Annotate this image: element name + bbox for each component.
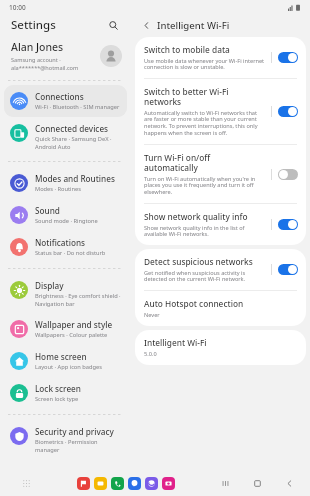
staticText: Switch to mobile data xyxy=(144,44,230,55)
staticText: Show network quality info xyxy=(144,211,248,222)
button[interactable]: Modes and Routines xyxy=(4,167,127,199)
button[interactable]: App xyxy=(162,477,175,490)
button[interactable]: Search xyxy=(105,17,121,33)
staticText: Switch to better Wi-Fi networks xyxy=(144,86,265,107)
button[interactable]: Alan Jones xyxy=(0,36,131,78)
button[interactable]: Wallpaper and style xyxy=(4,313,127,345)
button[interactable]: App xyxy=(111,477,124,490)
button[interactable]: App xyxy=(128,477,141,490)
staticText: Intelligent Wi-Fi xyxy=(157,19,230,32)
staticText: Connections xyxy=(35,91,84,102)
button[interactable]: Intelligent Wi-Fi xyxy=(135,330,306,365)
staticText: Sound mode · Ringtone xyxy=(35,217,98,225)
staticText: Status bar · Do not disturb xyxy=(35,249,106,257)
button[interactable]: Back xyxy=(139,18,153,32)
staticText: Security and privacy xyxy=(35,426,114,437)
staticText: Layout · App icon badges xyxy=(35,363,102,371)
staticText: Use mobile data whenever your Wi-Fi inte… xyxy=(144,57,265,71)
button[interactable]: Toggle on xyxy=(278,106,298,117)
button[interactable]: Home xyxy=(250,476,264,490)
staticText: Turn Wi-Fi on/off automatically xyxy=(144,152,265,173)
staticText: Show network quality info in the list of… xyxy=(144,224,265,238)
button[interactable]: Toggle on xyxy=(278,52,298,63)
staticText: Screen lock type xyxy=(35,395,79,403)
staticText: Brightness · Eye comfort shield · Naviga… xyxy=(35,292,121,307)
staticText: Notifications xyxy=(35,237,85,248)
staticText: 5.0.0 xyxy=(144,350,157,358)
staticText: Home screen xyxy=(35,351,87,362)
button[interactable]: Recents xyxy=(218,476,232,490)
staticText: Automatically switch to Wi-Fi networks t… xyxy=(144,109,265,137)
button[interactable]: Sound xyxy=(4,199,127,231)
button[interactable]: Toggle on xyxy=(278,219,298,230)
button[interactable]: Home screen xyxy=(4,345,127,377)
button[interactable]: Show network quality info xyxy=(135,204,306,245)
staticText: 10:00 xyxy=(9,3,26,12)
button[interactable]: Toggle on xyxy=(278,264,298,275)
staticText: Auto Hotspot connection xyxy=(144,298,244,309)
button[interactable]: Notifications xyxy=(4,231,127,263)
button[interactable]: Detect suspicious networks xyxy=(135,249,306,291)
staticText: Samsung account · xyxy=(11,56,61,64)
staticText: Connected devices xyxy=(35,123,109,134)
button[interactable]: Security and privacy xyxy=(4,420,127,459)
staticText: Turn on Wi-Fi automatically when you're … xyxy=(144,175,265,196)
staticText: Wallpaper and style xyxy=(35,319,113,330)
staticText: Modes · Routines xyxy=(35,185,81,193)
staticText: ala*******@hotmail.com xyxy=(11,64,79,72)
button[interactable]: Connections xyxy=(4,85,127,117)
button[interactable]: Apps xyxy=(18,475,34,491)
button[interactable]: Connected devices xyxy=(4,117,127,156)
staticText: Settings xyxy=(11,17,56,33)
button[interactable]: Switch to mobile data xyxy=(135,37,306,79)
staticText: Modes and Routines xyxy=(35,173,115,184)
button[interactable]: Switch to better Wi-Fi networks xyxy=(135,79,306,145)
staticText: Biometrics · Permission manager xyxy=(35,438,121,453)
staticText: Detect suspicious networks xyxy=(144,256,253,267)
staticText: Never xyxy=(144,311,160,319)
button[interactable]: Turn Wi-Fi on/off automatically xyxy=(135,145,306,204)
staticText: Wallpapers · Colour palette xyxy=(35,331,108,339)
button[interactable]: Back xyxy=(282,476,296,490)
staticText: Intelligent Wi-Fi xyxy=(144,337,207,348)
staticText: Get notified when suspicious activity is… xyxy=(144,269,265,283)
staticText: Lock screen xyxy=(35,383,81,394)
button[interactable]: Auto Hotspot connection xyxy=(135,291,306,326)
button[interactable]: App xyxy=(145,477,158,490)
staticText: Display xyxy=(35,280,64,291)
staticText: Sound xyxy=(35,205,60,216)
button[interactable]: App xyxy=(77,477,90,490)
button[interactable]: Toggle off xyxy=(278,169,298,180)
staticText: Wi-Fi · Bluetooth · SIM manager xyxy=(35,103,120,111)
button[interactable]: Lock screen xyxy=(4,377,127,409)
button[interactable]: Display xyxy=(4,274,127,313)
staticText: Quick Share · Samsung DeX · Android Auto xyxy=(35,135,121,150)
staticText: Alan Jones xyxy=(11,40,64,54)
button[interactable]: App xyxy=(94,477,107,490)
